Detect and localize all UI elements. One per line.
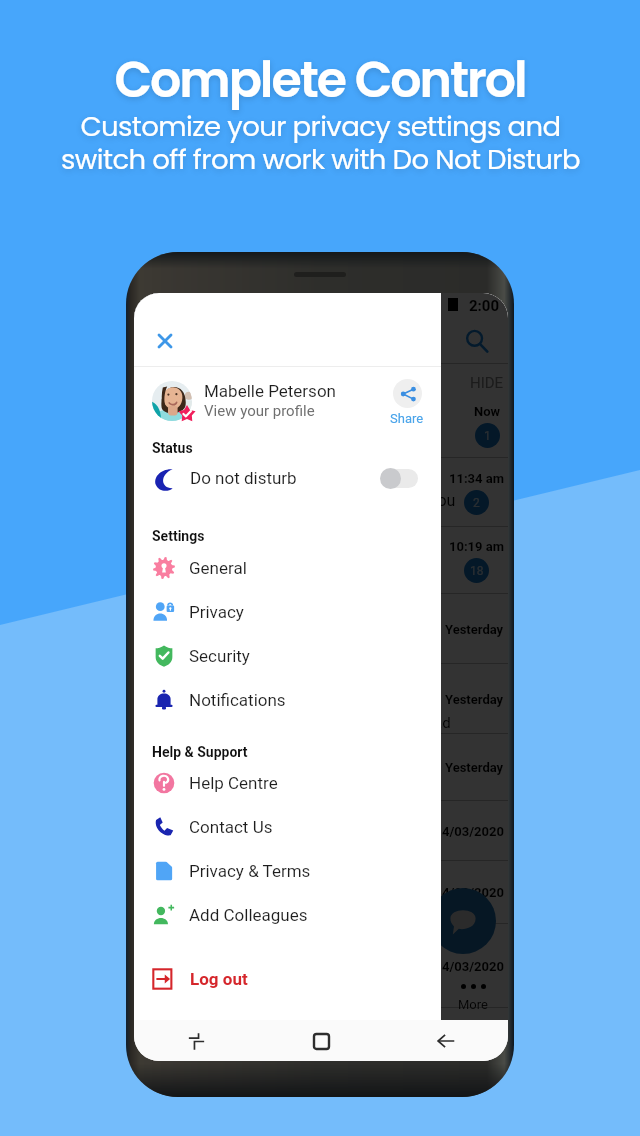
button[interactable]: Home [304, 1024, 338, 1058]
staticText: Yesterday [445, 760, 504, 775]
button[interactable]: Back [429, 1024, 463, 1058]
staticText: Log out [190, 969, 248, 989]
button[interactable]: Help Centre [134, 761, 441, 805]
button[interactable]: Close [146, 322, 184, 360]
staticText: Do not disturb [190, 468, 297, 488]
staticText: Privacy [189, 602, 244, 622]
staticText: Complete Control [114, 46, 526, 115]
staticText: Share [390, 411, 424, 426]
staticText: 4/03/2020 [442, 959, 504, 974]
staticText: 4/03/2020 [442, 885, 504, 900]
staticText: Help Centre [189, 773, 278, 793]
button[interactable]: Recent apps [179, 1024, 213, 1058]
button[interactable]: Share [390, 379, 424, 426]
staticText: Customize your privacy settings and swit… [61, 107, 580, 179]
staticText: Settings [152, 528, 205, 544]
button[interactable]: Security [134, 634, 441, 678]
button[interactable]: Search [460, 324, 494, 358]
staticText: Help & Support [152, 744, 248, 760]
staticText: .. [434, 576, 442, 594]
button[interactable]: Mabelle Peterson [134, 367, 441, 434]
staticText: 11:34 am [449, 471, 504, 486]
staticText: 10:19 am [449, 539, 504, 554]
staticText: Yesterday [445, 692, 504, 707]
staticText: Contact Us [189, 817, 273, 837]
staticText: Status [152, 440, 193, 456]
staticText: More [458, 997, 488, 1012]
staticText: .. [434, 846, 442, 864]
button[interactable]: Privacy & Terms [134, 849, 441, 893]
staticText: 2 [473, 496, 480, 510]
staticText: Security [189, 646, 250, 666]
staticText: View your profile [204, 402, 315, 420]
staticText: 1 [484, 429, 491, 443]
button[interactable]: Contact Us [134, 805, 441, 849]
staticText: Privacy & Terms [189, 861, 311, 881]
button[interactable]: Notifications [134, 678, 441, 722]
button[interactable]: Add Colleagues [134, 893, 441, 937]
staticText: 2:00 [469, 297, 500, 315]
button[interactable]: Log out [134, 959, 441, 999]
staticText: General [189, 558, 247, 578]
staticText: Yesterday [445, 622, 504, 637]
staticText: Now [474, 404, 501, 419]
staticText: you [430, 491, 456, 510]
button[interactable]: Privacy [134, 590, 441, 634]
staticText: ad [434, 714, 451, 732]
button[interactable]: New message [430, 888, 496, 954]
staticText: Add Colleagues [189, 905, 308, 925]
staticText: HIDE [470, 374, 504, 392]
button[interactable]: Do not disturb [134, 456, 441, 500]
staticText: 18 [470, 564, 484, 578]
button[interactable]: General [134, 546, 441, 590]
staticText: 4/03/2020 [442, 824, 504, 839]
staticText: Notifications [189, 690, 286, 710]
staticText: Mabelle Peterson [204, 381, 336, 401]
